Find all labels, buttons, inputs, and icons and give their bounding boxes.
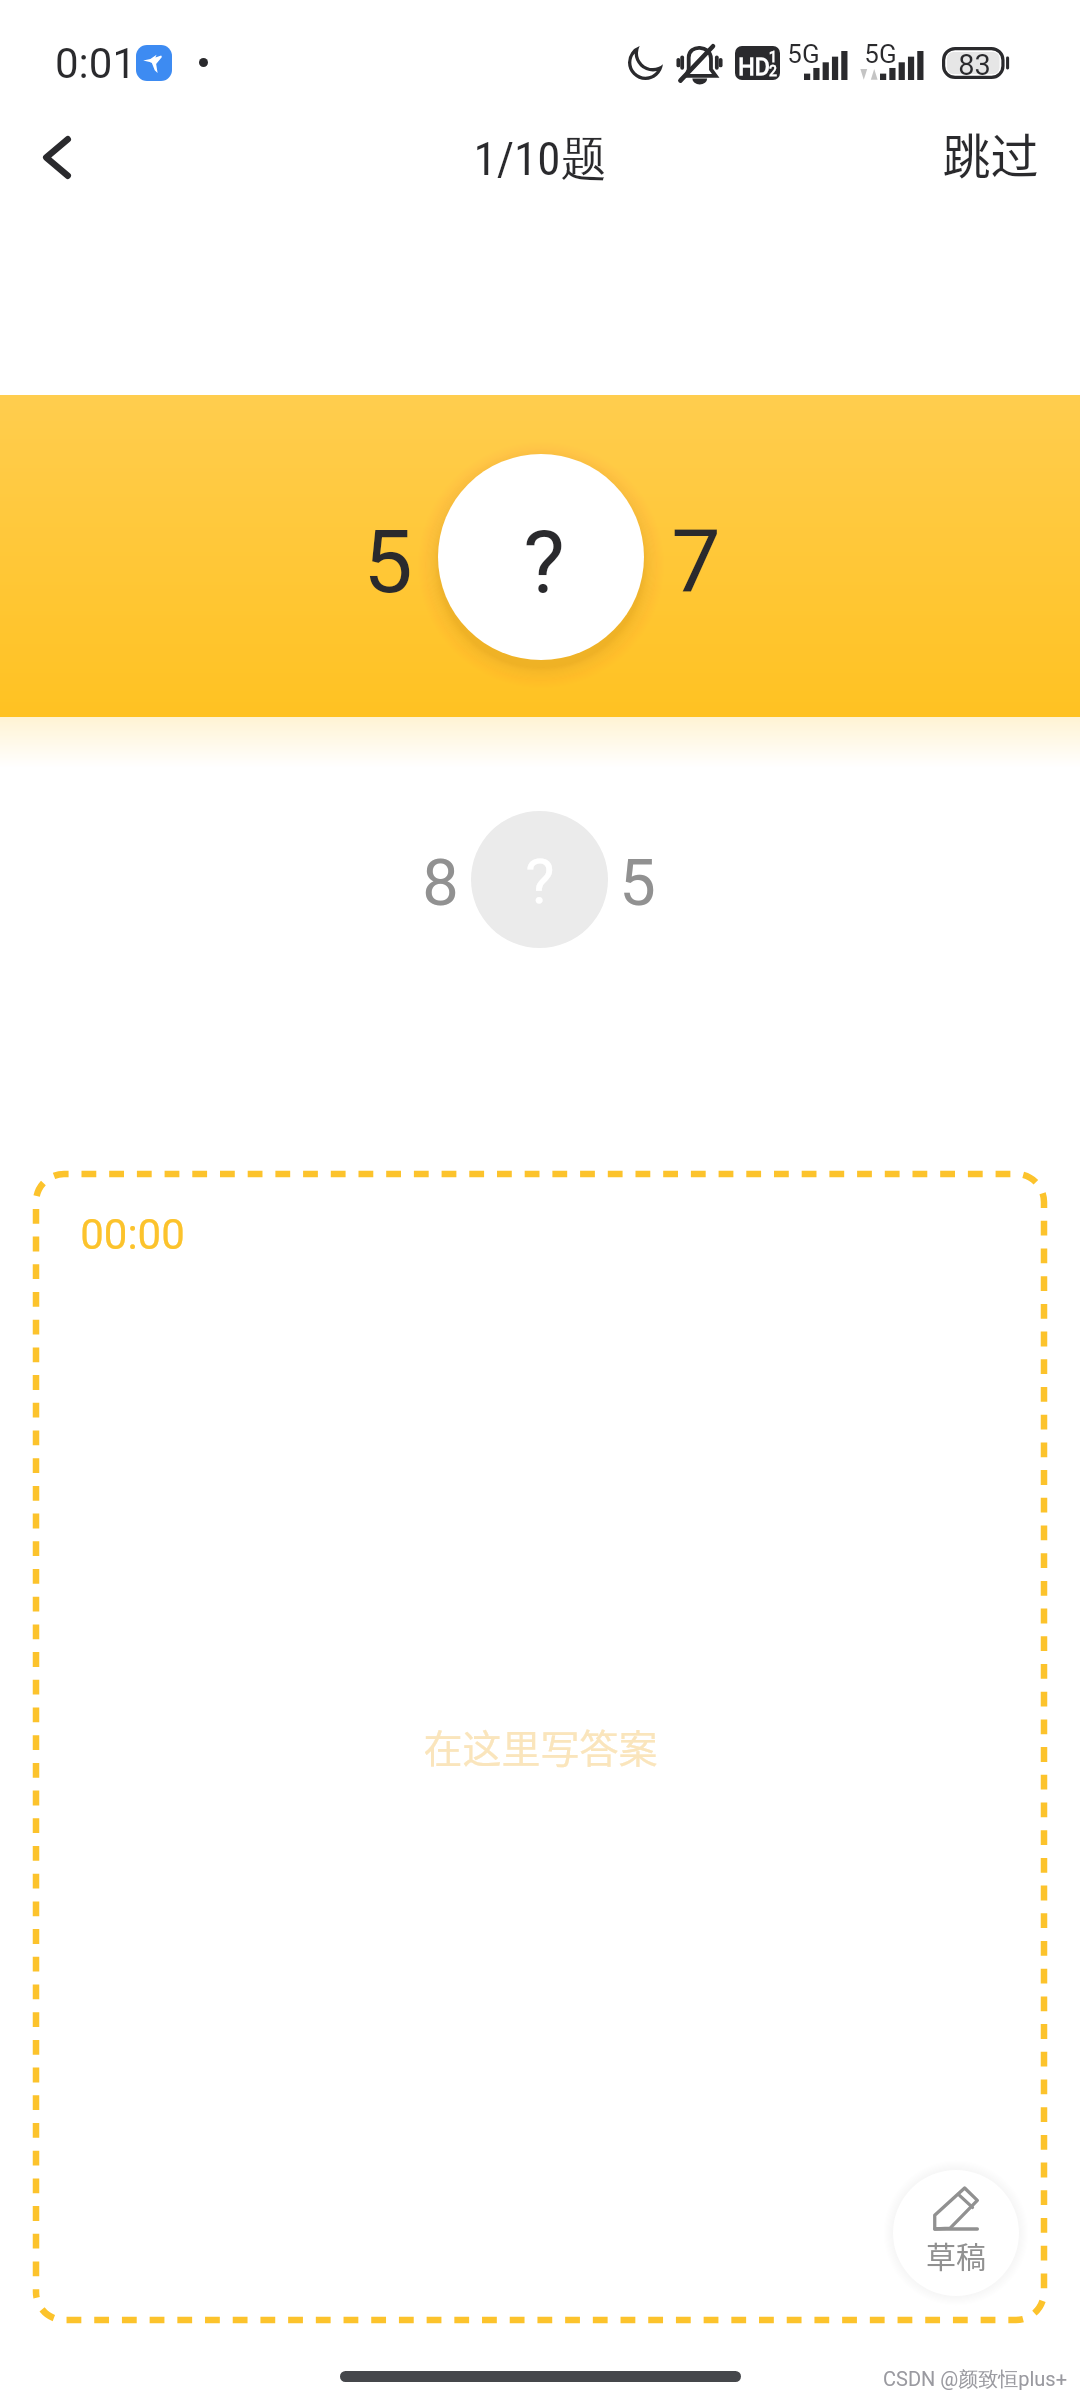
staticText: 83 xyxy=(958,48,991,78)
staticText: 5 xyxy=(619,845,656,921)
staticText: CSDN @颜致恒plus+ xyxy=(883,2367,1067,2392)
staticText: 草稿 xyxy=(926,2233,986,2276)
button[interactable]: 草稿 xyxy=(893,2170,1019,2296)
staticText: 8 xyxy=(422,845,459,921)
staticText: HD xyxy=(738,54,770,80)
button[interactable]: 跳过 xyxy=(918,106,1063,200)
staticText: ? xyxy=(523,510,565,613)
staticText: 5G xyxy=(864,39,897,69)
staticText: 5 xyxy=(363,510,413,613)
staticText: 00:00 xyxy=(80,1210,185,1259)
staticText: 7 xyxy=(671,510,721,613)
staticText: ? xyxy=(525,845,555,918)
staticText: 5G xyxy=(787,39,820,69)
staticText: 在这里写答案 xyxy=(423,1718,658,1774)
staticText: 2 xyxy=(769,63,777,79)
staticText: 1 xyxy=(769,49,777,65)
button[interactable]: Back xyxy=(6,106,108,208)
staticText: 跳过 xyxy=(942,118,1039,188)
staticText: 0:01 xyxy=(55,39,136,88)
staticText: 1/10题 xyxy=(473,130,608,189)
button[interactable]: 在这里写答案 xyxy=(36,1174,1044,2320)
